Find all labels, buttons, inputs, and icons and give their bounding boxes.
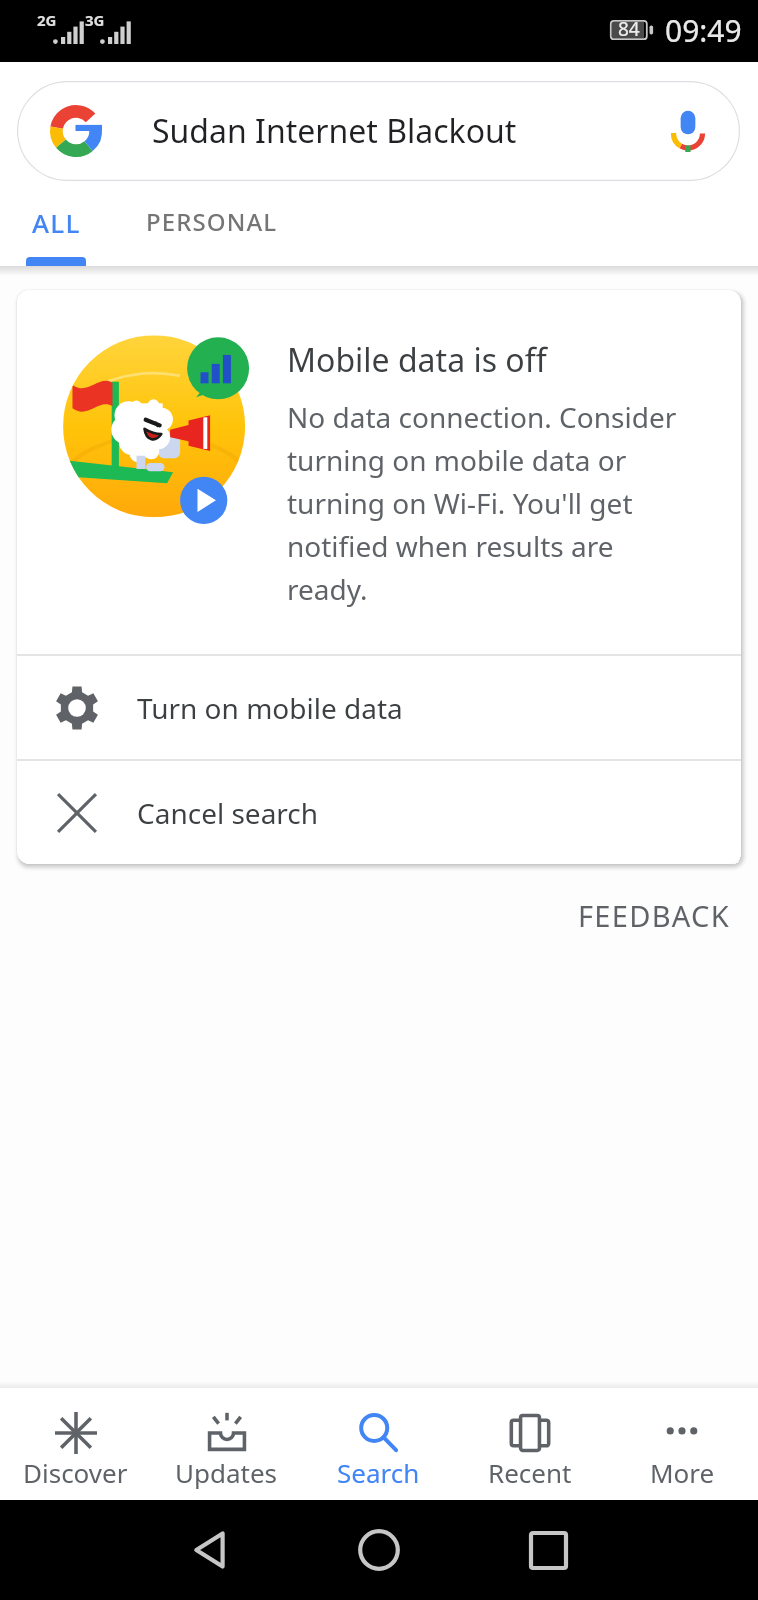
staticText: Discover (23, 1455, 128, 1490)
staticText: FEEDBACK (578, 896, 730, 935)
button[interactable]: Recents (508, 1510, 588, 1590)
button[interactable]: PERSONAL (112, 190, 312, 266)
button[interactable]: Turn on mobile data (17, 656, 741, 759)
button[interactable]: Cancel search (17, 761, 741, 864)
staticText: Sudan Internet Blackout (152, 109, 517, 153)
button[interactable]: Discover (0, 1388, 151, 1500)
staticText: More (650, 1455, 715, 1490)
button[interactable]: Voice search (650, 93, 726, 169)
staticText: Cancel search (137, 794, 319, 832)
button[interactable]: Back (170, 1510, 250, 1590)
staticText: No data connection. Consider turning on … (287, 398, 683, 608)
staticText: 3G (85, 10, 105, 30)
staticText: ALL (32, 205, 81, 240)
button[interactable]: Home (339, 1510, 419, 1590)
staticText: 09:49 (665, 10, 742, 51)
button[interactable]: FEEDBACK (554, 864, 758, 955)
staticText: Turn on mobile data (137, 689, 403, 727)
staticText: Search (337, 1455, 420, 1490)
button[interactable]: More (606, 1388, 758, 1500)
staticText: PERSONAL (146, 205, 278, 238)
staticText: 2G (37, 10, 57, 30)
button[interactable]: Updates (151, 1388, 302, 1500)
staticText: 84 (618, 16, 640, 42)
button[interactable]: Sudan Internet Blackout (17, 81, 740, 181)
button[interactable]: ALL (0, 190, 112, 266)
staticText: Recent (488, 1455, 572, 1490)
button[interactable]: Search (302, 1388, 454, 1500)
staticText: Updates (175, 1455, 278, 1490)
staticText: Mobile data is off (287, 338, 547, 382)
button[interactable]: Recent (454, 1388, 606, 1500)
